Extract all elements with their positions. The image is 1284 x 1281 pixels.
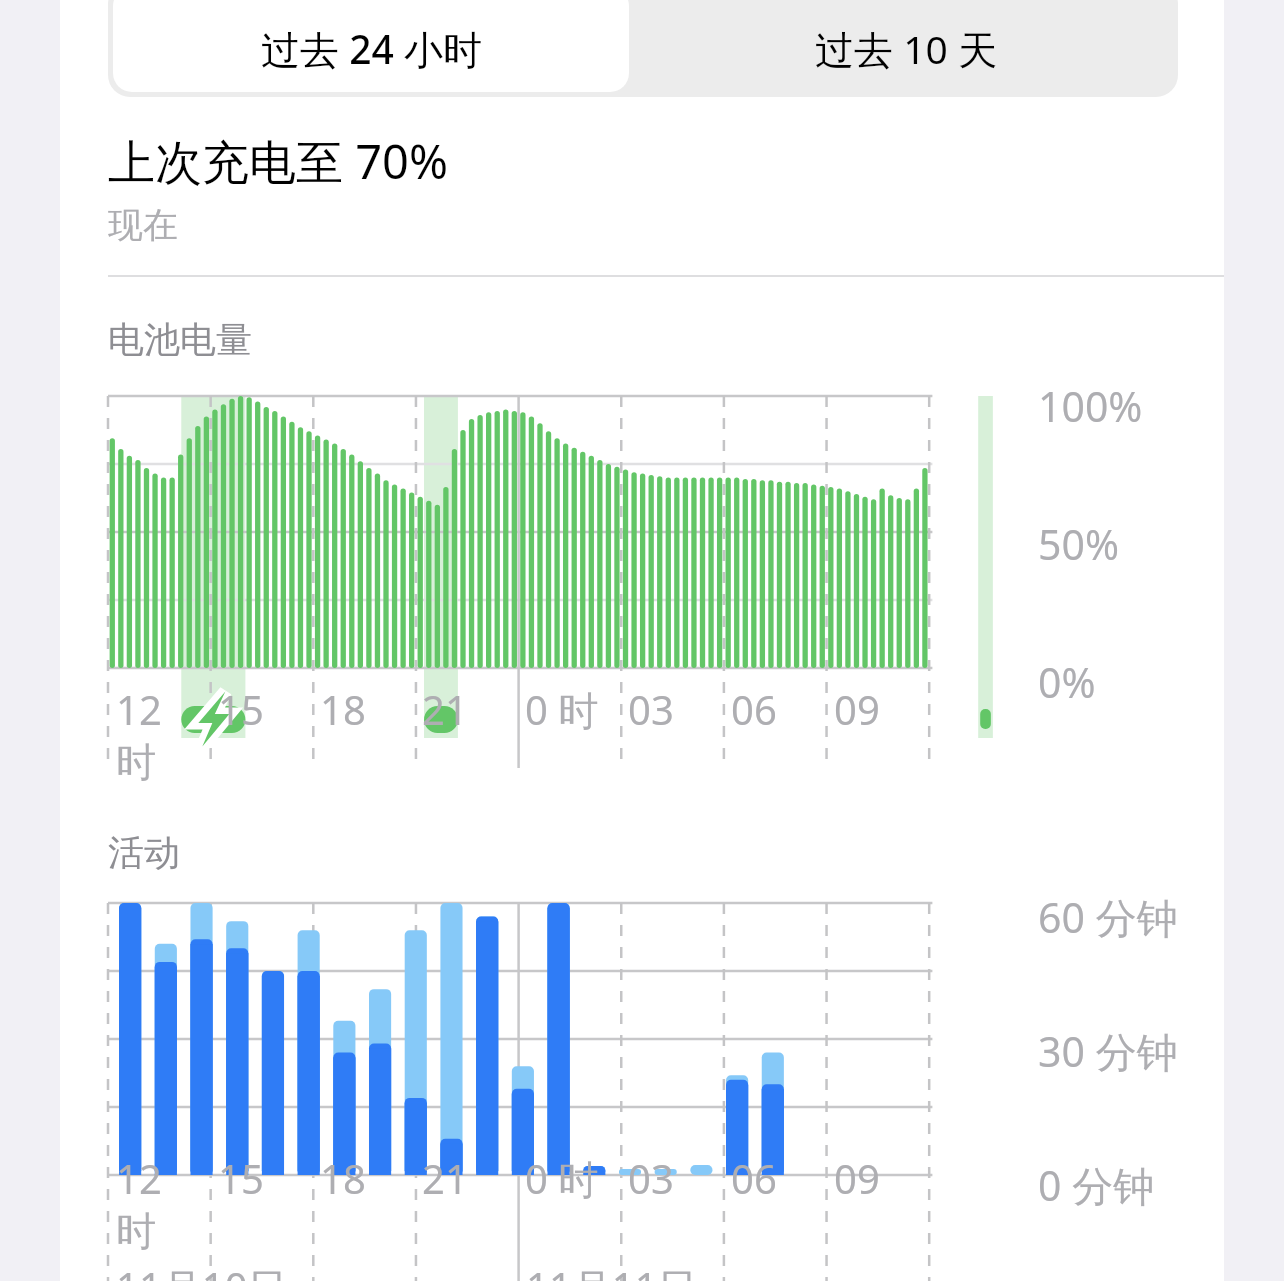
staticText: 03 (628, 1151, 674, 1205)
staticText: 电池电量 (108, 317, 252, 362)
staticText: 100% (1038, 378, 1143, 434)
button[interactable]: 过去 10 天 (634, 0, 1178, 97)
staticText: 06 (731, 1151, 777, 1205)
staticText: 0% (1038, 654, 1096, 710)
staticText: 0 时 (525, 682, 599, 737)
staticText: 09 (834, 682, 880, 736)
staticText: 15 (218, 1151, 264, 1205)
staticText: 18 (320, 682, 366, 736)
staticText: 06 (731, 682, 777, 736)
staticText: 03 (628, 682, 674, 736)
staticText: 过去 24 小时 (261, 22, 482, 75)
staticText: 现在 (108, 203, 178, 247)
staticText: 12 时 (116, 1151, 210, 1257)
staticText: 过去 10 天 (815, 22, 997, 75)
staticText: 50% (1038, 516, 1119, 572)
staticText: 11月10日 (116, 1259, 288, 1281)
staticText: 0 时 (525, 1151, 599, 1206)
staticText: 18 (320, 1151, 366, 1205)
staticText: 09 (834, 1151, 880, 1205)
staticText: 0 分钟 (1038, 1157, 1155, 1213)
staticText: 12 时 (116, 682, 210, 788)
staticText: 60 分钟 (1038, 889, 1178, 945)
staticText: 活动 (108, 830, 180, 875)
button[interactable]: 过去 24 小时 (113, 0, 629, 92)
staticText: 11月11日 (526, 1259, 698, 1281)
staticText: 21 (422, 1151, 468, 1205)
staticText: 30 分钟 (1038, 1023, 1178, 1079)
staticText: 21 (422, 682, 468, 736)
staticText: 上次充电至 70% (108, 129, 449, 193)
staticText: 15 (218, 682, 264, 736)
